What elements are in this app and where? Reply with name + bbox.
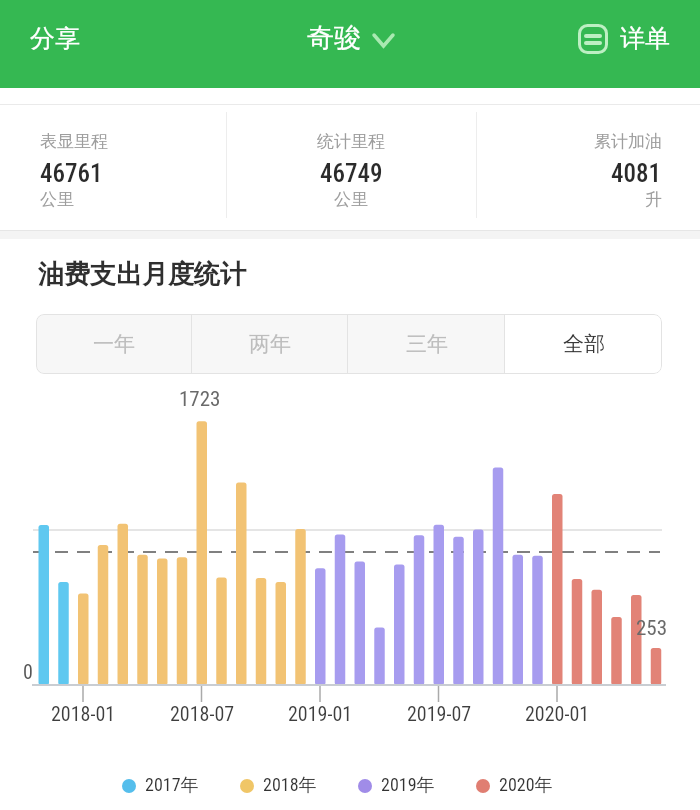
button[interactable]: 分享 (18, 11, 92, 66)
staticText: 全部 (563, 331, 605, 357)
button[interactable]: 2019年 (358, 774, 435, 797)
staticText: 2019-07 (407, 702, 472, 725)
staticText: 三年 (406, 331, 448, 357)
staticText: 253 (636, 616, 668, 641)
staticText: 46761 (40, 159, 103, 188)
staticText: 46749 (320, 159, 383, 188)
button[interactable]: 两年 (192, 314, 348, 374)
staticText: 公里 (334, 189, 368, 210)
staticText: 统计里程 (317, 131, 385, 152)
button[interactable]: 2020年 (476, 774, 553, 797)
staticText: 2017年 (145, 774, 199, 797)
staticText: 一年 (93, 331, 135, 357)
staticText: 升 (645, 189, 662, 210)
staticText: 2018年 (263, 774, 317, 797)
staticText: 分享 (30, 23, 80, 54)
button[interactable]: 一年 (36, 314, 192, 374)
staticText: 油费支出月度统计 (38, 258, 246, 291)
staticText: 累计加油 (594, 131, 662, 152)
staticText: 2018-01 (51, 702, 116, 725)
staticText: 0 (23, 660, 33, 683)
staticText: 2019-01 (288, 702, 353, 725)
staticText: 2020年 (499, 774, 553, 797)
staticText: 2019年 (381, 774, 435, 797)
staticText: 2020-01 (525, 702, 590, 725)
staticText: 公里 (40, 189, 74, 210)
button[interactable]: 奇骏 (299, 13, 401, 63)
button[interactable]: 2018年 (240, 774, 317, 797)
staticText: 2018-07 (170, 702, 235, 725)
button[interactable]: 详单 (572, 17, 676, 60)
staticText: 表显里程 (40, 131, 108, 152)
staticText: 两年 (249, 331, 291, 357)
button[interactable]: 全部 (505, 314, 662, 374)
staticText: 1723 (179, 387, 221, 412)
staticText: 详单 (620, 23, 670, 54)
button[interactable]: 2017年 (122, 774, 199, 797)
staticText: 4081 (611, 159, 662, 188)
staticText: 奇骏 (307, 21, 361, 55)
button[interactable]: 三年 (348, 314, 505, 374)
